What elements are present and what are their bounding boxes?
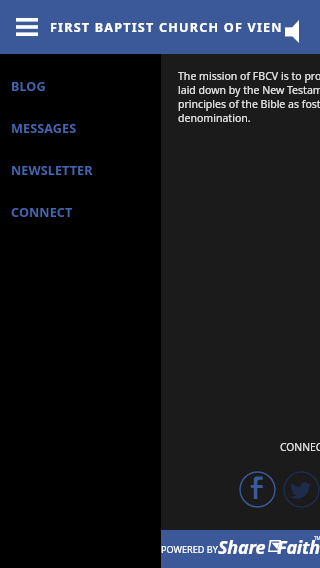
button[interactable]: Twitter — [283, 471, 320, 508]
button[interactable]: Open navigation menu — [0, 0, 54, 54]
button[interactable]: BLOG — [0, 65, 161, 107]
button[interactable]: Audio — [272, 9, 304, 49]
staticText: FIRST BAPTIST CHURCH OF VIENNA — [50, 19, 283, 36]
staticText: TM — [314, 535, 320, 541]
button[interactable]: CONNECT — [0, 191, 161, 233]
staticText: NEWSLETTER — [11, 162, 93, 179]
staticText: POWERED BY — [161, 543, 218, 555]
button[interactable]: Facebook — [239, 471, 276, 508]
button[interactable]: MESSAGES — [0, 107, 161, 149]
button[interactable]: NEWSLETTER — [0, 149, 161, 191]
staticText: The mission of FBCV is to proclaim the g… — [178, 69, 320, 125]
staticText: Faith — [277, 535, 320, 560]
staticText: MESSAGES — [11, 120, 77, 137]
button[interactable]: POWERED BY — [161, 530, 320, 568]
staticText: CONNECT — [11, 204, 73, 221]
staticText: BLOG — [11, 78, 46, 95]
staticText: CONNECT — [280, 440, 320, 454]
staticText: Share — [218, 535, 266, 560]
